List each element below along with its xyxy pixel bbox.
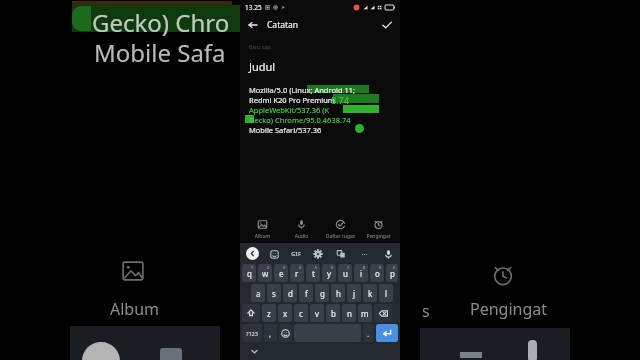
- staticText: d: [288, 288, 293, 299]
- staticText: Daftar tugas: [321, 233, 360, 240]
- staticText: Album: [110, 298, 160, 320]
- staticText: ?123: [246, 330, 258, 337]
- button[interactable]: Shift: [242, 304, 260, 322]
- button[interactable]: y: [322, 264, 336, 282]
- staticText: 8: [363, 265, 366, 270]
- button[interactable]: t: [306, 264, 320, 282]
- button[interactable]: Voice input: [382, 248, 394, 260]
- staticText: Mobile Safa: [94, 36, 226, 69]
- staticText: p: [390, 268, 395, 279]
- staticText: .: [367, 328, 370, 339]
- button[interactable]: a: [251, 284, 265, 302]
- staticText: 7: [347, 265, 350, 270]
- staticText: k: [368, 288, 373, 299]
- staticText: Gecko) Chro: [92, 6, 230, 39]
- staticText: y: [327, 268, 332, 279]
- staticText: 5: [315, 265, 318, 270]
- staticText: i: [360, 268, 363, 279]
- staticText: 6: [331, 265, 334, 270]
- button[interactable]: Expand toolbar: [246, 247, 259, 260]
- staticText: s: [422, 300, 430, 322]
- staticText: AppleWebKit/537.36 (K: [249, 105, 330, 115]
- button[interactable]: Enter: [376, 324, 398, 342]
- button[interactable]: p: [386, 264, 398, 282]
- staticText: l: [385, 288, 388, 299]
- button[interactable]: l: [379, 284, 393, 302]
- button[interactable]: z: [262, 304, 276, 322]
- button[interactable]: Album: [243, 219, 282, 240]
- button[interactable]: k: [363, 284, 377, 302]
- staticText: ➤: [281, 4, 286, 10]
- button[interactable]: g: [315, 284, 329, 302]
- button[interactable]: q: [242, 264, 256, 282]
- button[interactable]: Translate: [335, 248, 347, 260]
- staticText: m: [361, 308, 369, 319]
- staticText: Gecko) Chrome/95.0.4638.74: [249, 115, 351, 125]
- button[interactable]: c: [294, 304, 308, 322]
- staticText: ,: [269, 328, 272, 339]
- button[interactable]: Audio: [282, 219, 321, 240]
- staticText: w: [262, 268, 269, 279]
- button[interactable]: i: [354, 264, 368, 282]
- staticText: 1: [251, 265, 254, 270]
- staticText: Pengingat: [360, 233, 397, 240]
- staticText: 3: [283, 265, 286, 270]
- staticText: u: [343, 268, 348, 279]
- button[interactable]: Emoji: [279, 324, 292, 342]
- button[interactable]: f: [299, 284, 313, 302]
- button[interactable]: d: [283, 284, 297, 302]
- staticText: Pengingat: [470, 298, 548, 320]
- button[interactable]: Stickers: [268, 248, 280, 260]
- button[interactable]: u: [338, 264, 352, 282]
- button[interactable]: ?123: [242, 324, 262, 342]
- staticText: 8.74: [331, 94, 349, 104]
- button[interactable]: h: [331, 284, 345, 302]
- staticText: Album: [243, 233, 282, 240]
- button[interactable]: j: [347, 284, 361, 302]
- staticText: j: [353, 288, 356, 299]
- button[interactable]: Pengingat: [360, 219, 397, 240]
- button[interactable]: More options: [358, 248, 370, 260]
- button[interactable]: ,: [264, 324, 277, 342]
- button[interactable]: Back: [246, 18, 260, 32]
- button[interactable]: v: [310, 304, 324, 322]
- button[interactable]: Settings: [312, 248, 324, 260]
- button[interactable]: w: [258, 264, 272, 282]
- staticText: Baru saja: [249, 44, 271, 51]
- button[interactable]: Daftar tugas: [321, 219, 360, 240]
- staticText: q: [247, 268, 252, 279]
- button[interactable]: GIF: [291, 250, 301, 258]
- staticText: GIF: [291, 250, 301, 258]
- staticText: Mozilla/5.0 (Linux; Android 11;: [249, 85, 356, 95]
- button[interactable]: Backspace: [374, 304, 392, 322]
- staticText: e: [279, 268, 284, 279]
- button[interactable]: Save: [380, 18, 394, 32]
- button[interactable]: s: [267, 284, 281, 302]
- button[interactable]: n: [342, 304, 356, 322]
- button[interactable]: r: [290, 264, 304, 282]
- button[interactable]: .: [363, 324, 374, 342]
- staticText: Judul: [249, 59, 276, 74]
- staticText: Mobile Safari/537.36: [249, 125, 322, 135]
- button[interactable]: m: [358, 304, 372, 322]
- staticText: o: [375, 268, 380, 279]
- button[interactable]: Hide keyboard: [248, 345, 260, 357]
- staticText: 4: [299, 265, 302, 270]
- staticText: 0: [393, 265, 396, 270]
- staticText: Audio: [282, 233, 321, 240]
- staticText: g: [320, 288, 325, 299]
- staticText: n: [347, 308, 352, 319]
- staticText: x: [283, 308, 288, 319]
- staticText: c: [299, 308, 303, 319]
- staticText: a: [256, 288, 261, 299]
- button[interactable]: o: [370, 264, 384, 282]
- staticText: z: [267, 308, 271, 319]
- button[interactable]: x: [278, 304, 292, 322]
- staticText: Catatan: [267, 19, 299, 31]
- button[interactable]: b: [326, 304, 340, 322]
- staticText: b: [331, 308, 336, 319]
- staticText: h: [336, 288, 341, 299]
- staticText: t: [312, 268, 315, 279]
- button[interactable]: e: [274, 264, 288, 282]
